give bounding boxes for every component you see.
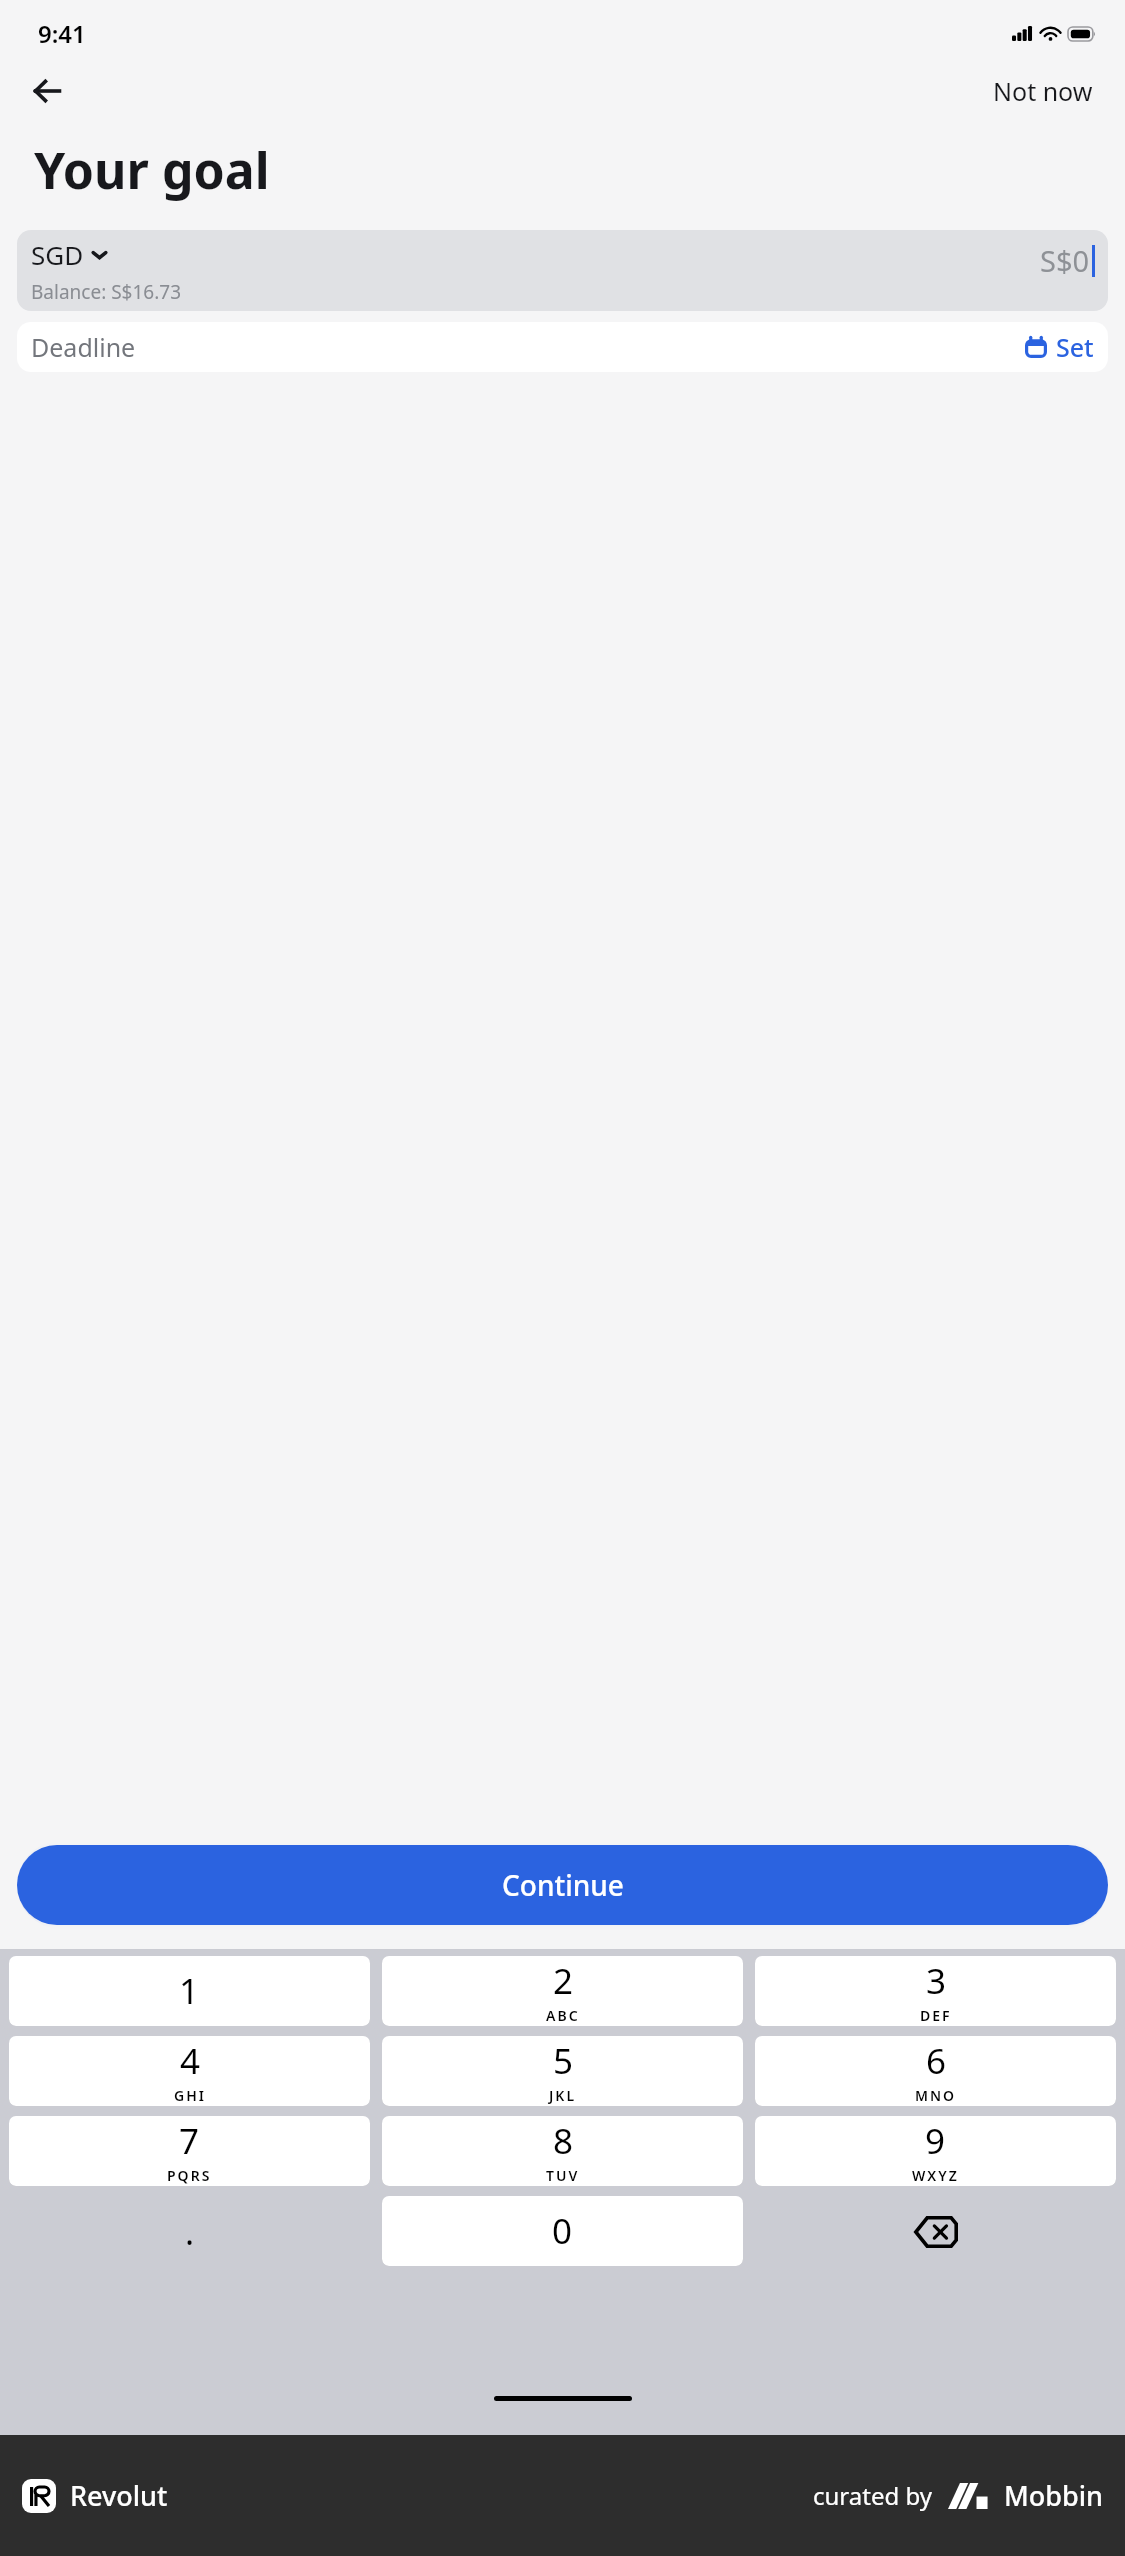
- button[interactable]: Deadline: [17, 322, 1108, 372]
- button[interactable]: SGD: [17, 230, 1108, 311]
- staticText: 4: [180, 2037, 201, 2085]
- staticText: 9: [925, 2117, 946, 2165]
- staticText: 7: [179, 2117, 200, 2165]
- button[interactable]: Not now: [981, 66, 1105, 116]
- staticText: Mobbin: [1004, 2477, 1103, 2514]
- staticText: 6: [926, 2037, 947, 2085]
- staticText: .: [185, 2209, 195, 2255]
- staticText: Balance: S$16.73: [31, 279, 182, 305]
- staticText: DEF: [920, 2006, 952, 2025]
- staticText: TUV: [546, 2166, 580, 2185]
- staticText: 1: [179, 1967, 200, 2015]
- staticText: S$0: [1040, 241, 1090, 280]
- button[interactable]: 7: [9, 2116, 370, 2186]
- staticText: Continue: [502, 1866, 624, 1904]
- button[interactable]: 1: [9, 1956, 370, 2026]
- staticText: curated by: [813, 2479, 932, 2512]
- staticText: 0: [552, 2207, 573, 2255]
- staticText: ABC: [546, 2006, 580, 2025]
- staticText: WXYZ: [912, 2166, 959, 2185]
- staticText: Set: [1056, 330, 1094, 364]
- button[interactable]: Backspace: [755, 2196, 1116, 2267]
- button[interactable]: 6: [755, 2036, 1116, 2106]
- button[interactable]: 2: [382, 1956, 743, 2026]
- staticText: Deadline: [31, 330, 136, 364]
- button[interactable]: 3: [755, 1956, 1116, 2026]
- staticText: SGD: [31, 237, 84, 272]
- staticText: 8: [553, 2117, 574, 2165]
- staticText: JKL: [549, 2086, 577, 2105]
- staticText: 5: [553, 2037, 574, 2085]
- button[interactable]: Back: [20, 64, 74, 118]
- button[interactable]: 0: [382, 2196, 743, 2266]
- staticText: Revolut: [70, 2477, 168, 2514]
- button[interactable]: .: [9, 2196, 370, 2267]
- button[interactable]: 4: [9, 2036, 370, 2106]
- staticText: Not now: [993, 74, 1093, 108]
- staticText: Your goal: [34, 136, 270, 204]
- staticText: MNO: [915, 2086, 957, 2105]
- button[interactable]: 9: [755, 2116, 1116, 2186]
- staticText: PQRS: [167, 2166, 212, 2185]
- button[interactable]: 5: [382, 2036, 743, 2106]
- button[interactable]: 8: [382, 2116, 743, 2186]
- staticText: GHI: [174, 2086, 206, 2105]
- staticText: 3: [926, 1957, 947, 2005]
- button[interactable]: Continue: [17, 1845, 1108, 1925]
- staticText: 2: [553, 1957, 574, 2005]
- staticText: 9:41: [38, 17, 86, 50]
